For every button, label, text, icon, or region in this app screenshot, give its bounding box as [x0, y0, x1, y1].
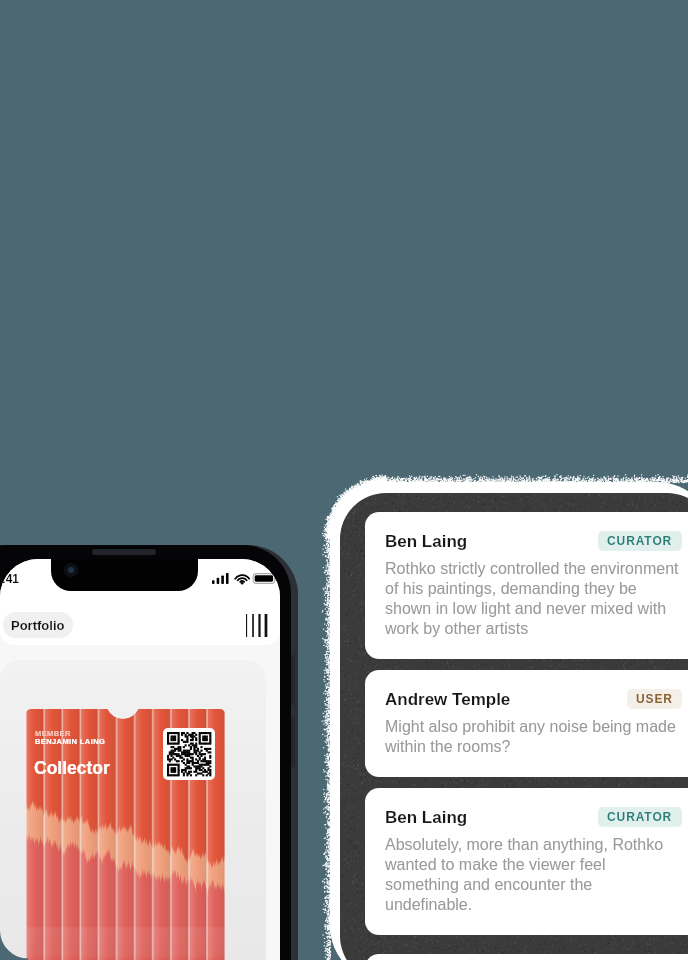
- staticText: Rothko strictly controlled the environme…: [385, 558, 682, 638]
- staticText: Ben Laing: [385, 531, 468, 551]
- button[interactable]: Andrew Temple: [365, 670, 688, 777]
- button[interactable]: Portfolio: [3, 612, 73, 638]
- button[interactable]: Ben Laing: [365, 512, 688, 659]
- staticText: Ben Laing: [385, 807, 468, 827]
- staticText: Collector: [34, 758, 110, 778]
- staticText: Portfolio: [11, 618, 65, 633]
- staticText: Absolutely, more than anything, Rothko w…: [385, 834, 682, 914]
- button[interactable]: Ben Laing: [365, 788, 688, 935]
- staticText: BENJAMIN LAING: [35, 738, 106, 746]
- button[interactable]: Filter: [246, 614, 268, 637]
- staticText: USER: [636, 693, 673, 706]
- staticText: MEMBER: [35, 730, 71, 738]
- button[interactable]: Andrew Temple: [365, 954, 688, 960]
- staticText: 9:41: [0, 572, 20, 586]
- staticText: Andrew Temple: [385, 689, 511, 709]
- staticText: CURATOR: [607, 535, 673, 548]
- staticText: Might also prohibit any noise being made…: [385, 716, 682, 756]
- staticText: CURATOR: [607, 811, 673, 824]
